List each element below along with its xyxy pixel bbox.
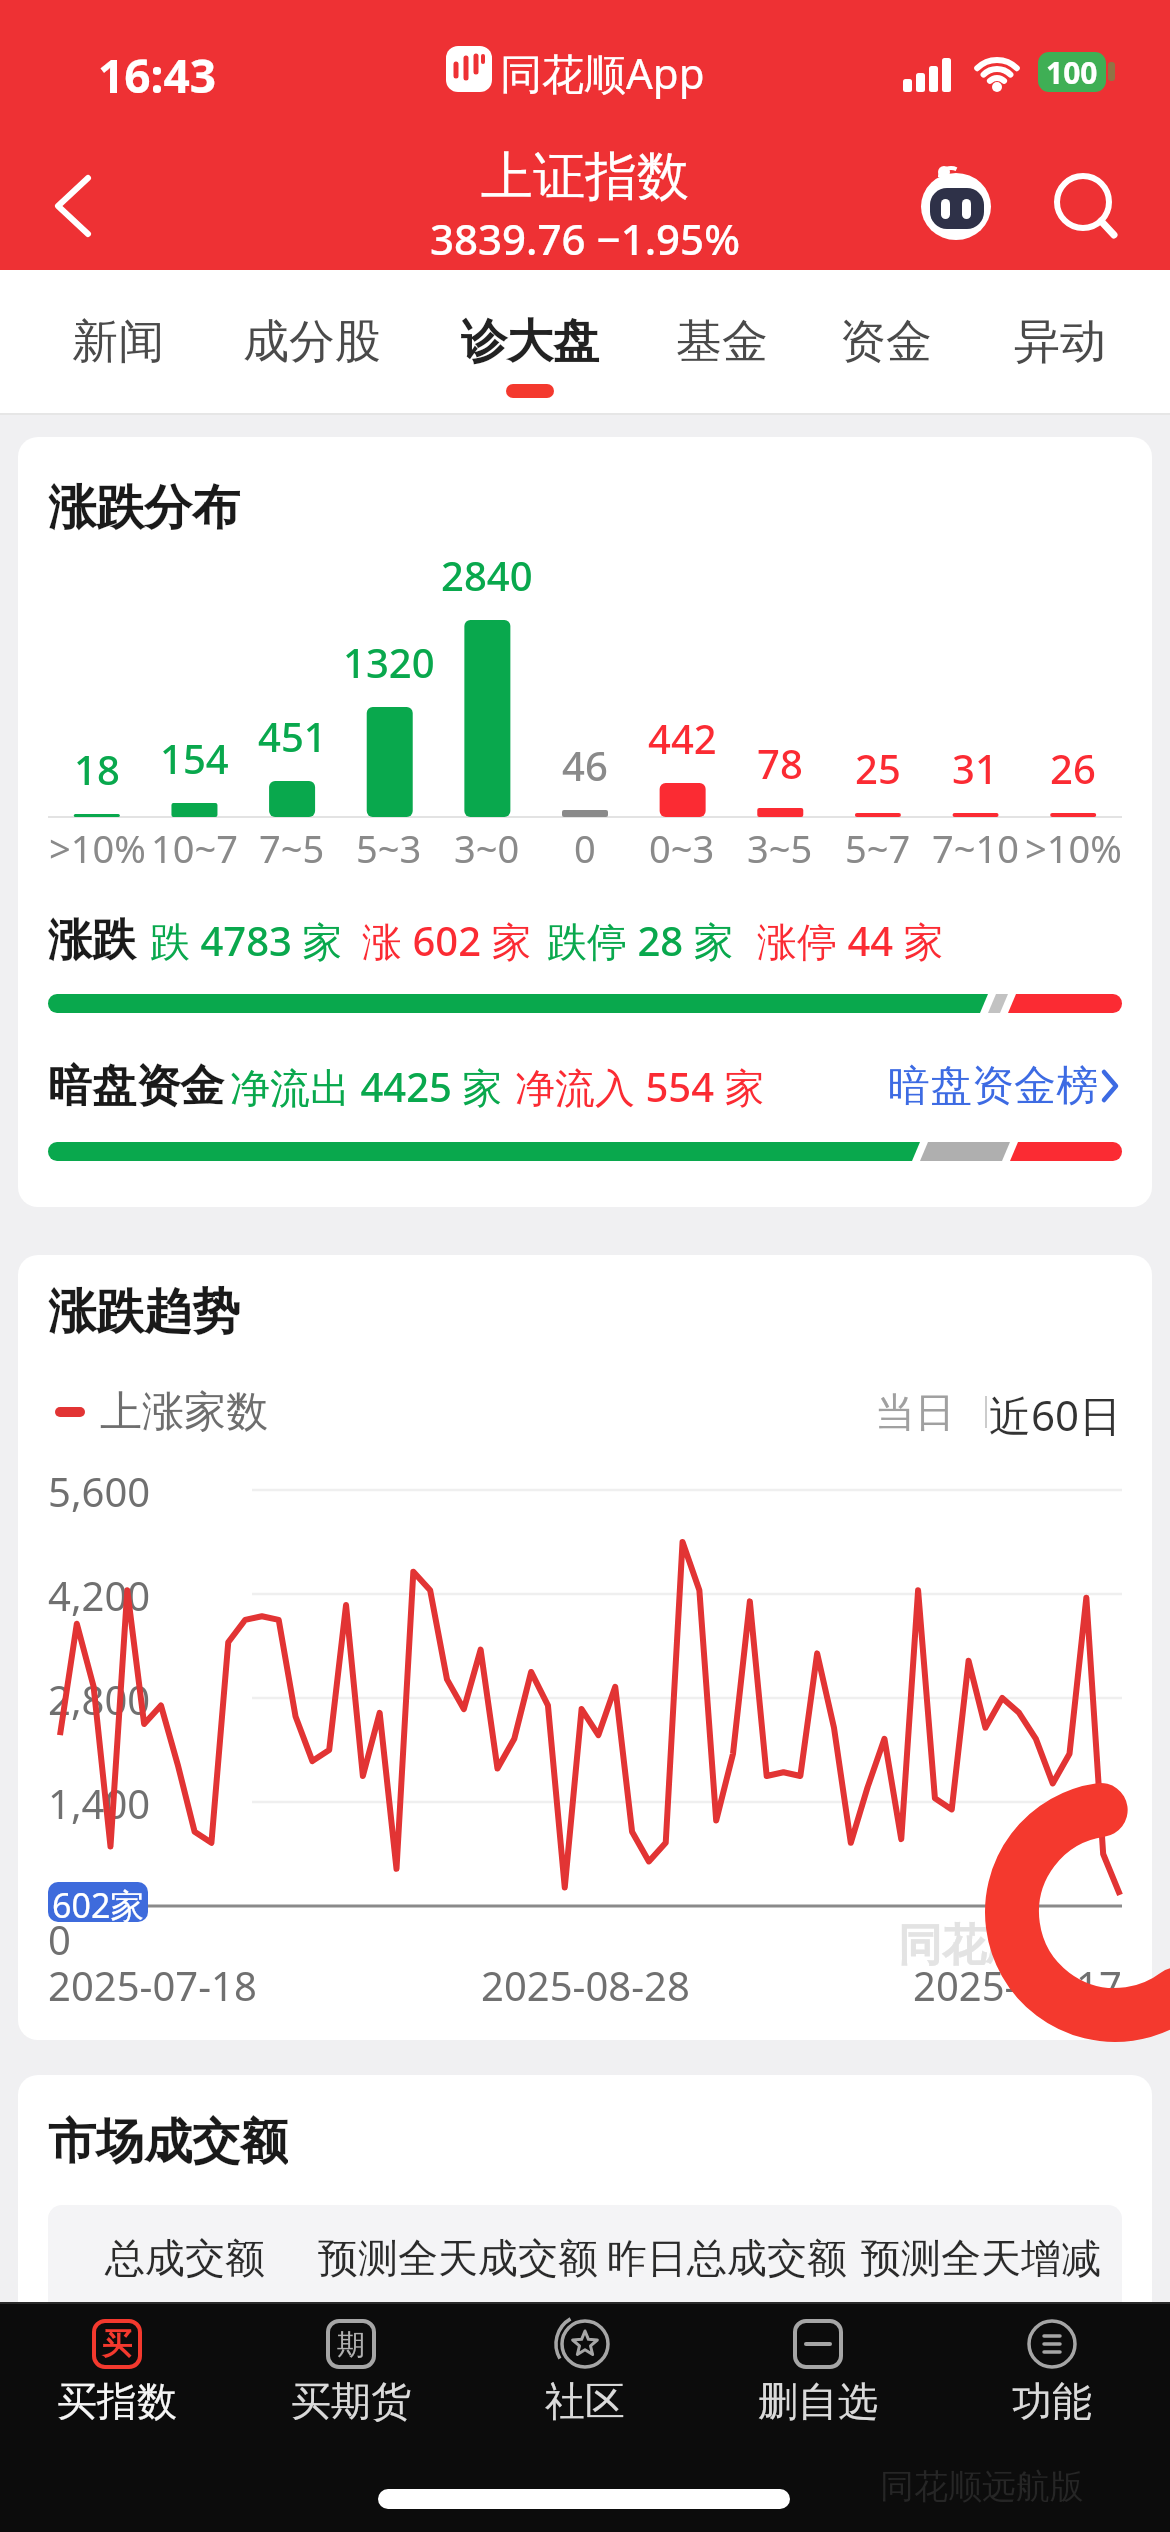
staticText: 跌停 28 家 [547, 913, 734, 968]
staticText: 2025-07-18 [48, 1958, 257, 2012]
staticText: 暗盘资金榜 [888, 1060, 1098, 1113]
staticText: 78 [757, 736, 803, 784]
staticText: >10% [49, 822, 146, 870]
staticText: 近60日 [989, 1386, 1122, 1438]
staticText: 删自选 [758, 2376, 878, 2426]
staticText: 同花顺远航版 [880, 2465, 1084, 2508]
staticText: 昨日总成交额 [607, 2233, 847, 2283]
staticText: 总成交额 [105, 2233, 265, 2283]
staticText: 442 [648, 711, 717, 759]
button[interactable]: 暗盘资金榜 [880, 1058, 1098, 1114]
staticText: 2025-10-17 [913, 1958, 1122, 2012]
staticText: 10~7 [151, 822, 238, 870]
staticText: 2,800 [48, 1672, 151, 1724]
staticText: 功能 [1012, 2376, 1092, 2426]
staticText: 同花顺 [898, 1918, 1030, 1966]
staticText: 净流入 554 家 [515, 1059, 765, 1114]
staticText: 25 [855, 741, 901, 789]
staticText: 异动 [1014, 313, 1106, 371]
button[interactable] [256, 2310, 446, 2440]
staticText: 期 [337, 2327, 365, 2362]
button[interactable] [30, 150, 140, 260]
button[interactable] [723, 2310, 913, 2440]
staticText: 同花顺App [500, 44, 705, 100]
staticText: 暗盘资金 [48, 1059, 224, 1114]
staticText: 买指数 [57, 2376, 177, 2426]
staticText: 预测全天增减 [861, 2233, 1101, 2283]
staticText: 诊大盘 [461, 313, 599, 371]
button[interactable]: 近60日 [955, 1386, 1122, 1438]
staticText: 5,600 [48, 1464, 151, 1516]
staticText: 26 [1050, 741, 1096, 789]
button[interactable]: 成分股 [232, 277, 392, 407]
staticText: 1320 [343, 635, 435, 683]
staticText: 5~7 [845, 822, 911, 870]
staticText: 16:43 [98, 44, 217, 100]
staticText: 1,400 [48, 1776, 151, 1828]
staticText: 451 [258, 709, 327, 757]
staticText: 涨跌趋势 [48, 1282, 240, 1342]
button[interactable]: 当日 [870, 1386, 960, 1438]
staticText: 4,200 [48, 1568, 151, 1620]
staticText: 154 [160, 731, 229, 779]
button[interactable]: 诊大盘 [450, 277, 610, 407]
button[interactable]: 基金 [652, 277, 792, 407]
staticText: >10% [1025, 822, 1122, 870]
staticText: 602家 [52, 1882, 145, 1922]
staticText: 净流出 4425 家 [230, 1059, 503, 1114]
staticText: 涨跌 [48, 913, 136, 968]
staticText: 买 [102, 2325, 132, 2363]
button[interactable] [905, 155, 1010, 260]
staticText: 5~3 [356, 822, 422, 870]
button[interactable] [22, 2310, 212, 2440]
staticText: 当日 [875, 1387, 955, 1437]
staticText: 上证指数 [481, 144, 689, 204]
staticText: 31 [952, 741, 998, 789]
staticText: 涨停 44 家 [757, 913, 944, 968]
staticText: 0 [48, 1912, 71, 1960]
staticText: 上涨家数 [100, 1386, 268, 1438]
button[interactable] [957, 2310, 1147, 2440]
staticText: 跌 4783 家 [150, 913, 343, 968]
staticText: 涨 602 家 [362, 913, 532, 968]
staticText: 0~3 [649, 822, 715, 870]
button[interactable] [1035, 155, 1135, 255]
button[interactable]: 资金 [816, 277, 956, 407]
staticText: 7~5 [259, 822, 325, 870]
staticText: 资金 [840, 313, 932, 371]
button[interactable] [490, 2310, 680, 2440]
staticText: 买期货 [291, 2376, 411, 2426]
staticText: 基金 [676, 313, 768, 371]
staticText: 3~5 [747, 822, 813, 870]
staticText: 社区 [545, 2376, 625, 2426]
staticText: 46 [562, 738, 608, 786]
staticText: 2025-08-28 [481, 1958, 690, 2012]
staticText: 100 [1046, 52, 1098, 92]
staticText: 2840 [441, 548, 533, 596]
staticText: 成分股 [243, 313, 381, 371]
staticText: 7~10 [932, 822, 1019, 870]
button[interactable]: 新闻 [48, 277, 188, 407]
staticText: 0 [574, 822, 596, 870]
button[interactable]: 异动 [990, 277, 1130, 407]
staticText: 预测全天成交额 [318, 2233, 598, 2283]
staticText: 涨跌分布 [48, 478, 240, 538]
staticText: 18 [74, 742, 120, 790]
staticText: 3~0 [454, 822, 520, 870]
staticText: 市场成交额 [48, 2112, 288, 2168]
staticText: 新闻 [72, 313, 164, 371]
staticText: 3839.76 −1.95% [430, 210, 740, 264]
